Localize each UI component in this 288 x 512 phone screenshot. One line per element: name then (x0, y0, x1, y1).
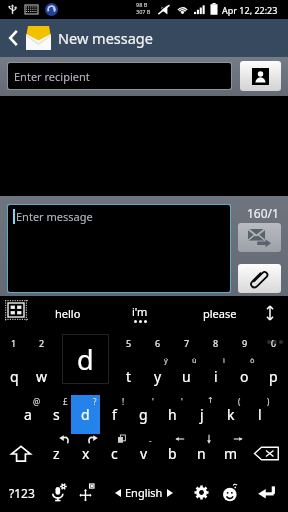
button[interactable]: i'm (110, 296, 170, 330)
button[interactable]: c (100, 434, 129, 473)
staticText: v (140, 444, 148, 463)
staticText: é (76, 355, 81, 365)
staticText: ý (164, 355, 168, 365)
staticText: a (24, 405, 32, 424)
staticText: Enter message (16, 209, 93, 224)
button[interactable]: Shift (0, 434, 42, 473)
button[interactable]: ↑ (187, 395, 216, 434)
staticText: ' (181, 396, 183, 407)
staticText: 8 (213, 337, 219, 349)
staticText: i (214, 367, 218, 386)
button[interactable]: - (129, 434, 158, 473)
staticText: 7 (184, 337, 190, 349)
staticText: hello (55, 306, 81, 321)
staticText: z (53, 444, 60, 463)
staticText: £ (63, 396, 68, 407)
button[interactable]: Expand suggestions (258, 296, 282, 330)
staticText: p (269, 367, 278, 386)
button[interactable]: ò (230, 356, 259, 395)
staticText: l (258, 405, 262, 424)
button[interactable]: Enter recipient (8, 63, 231, 89)
button[interactable]: ù (172, 356, 201, 395)
staticText: w (36, 367, 48, 386)
button[interactable]: Delete (245, 434, 288, 473)
button[interactable]: n (187, 434, 216, 473)
staticText: m (224, 444, 238, 463)
staticText: ò (250, 355, 255, 365)
staticText: q (10, 367, 19, 386)
staticText: 2 (39, 337, 45, 349)
button[interactable]: Send (238, 223, 281, 252)
button[interactable]: hello (34, 296, 102, 330)
staticText: u (182, 367, 191, 386)
button[interactable]: z (42, 434, 71, 473)
staticText: - (149, 435, 152, 446)
staticText: s (53, 405, 60, 424)
button[interactable]: t (114, 356, 143, 395)
staticText: 160/1 (247, 205, 279, 221)
staticText: 6 (155, 337, 161, 349)
button[interactable]: w (28, 356, 56, 395)
staticText: ?123 (9, 485, 35, 501)
button[interactable]: Move cursor (72, 473, 101, 512)
button[interactable]: q (0, 356, 28, 395)
button[interactable]: ' (129, 395, 158, 434)
staticText: n (197, 444, 206, 463)
button[interactable]: Select contacts (240, 61, 281, 91)
staticText: ì (223, 355, 225, 365)
button[interactable]: m (216, 434, 245, 473)
staticText: 0 (271, 337, 277, 349)
button[interactable]: x (71, 434, 100, 473)
button[interactable]: £ (42, 395, 71, 434)
staticText: r (97, 367, 103, 386)
button[interactable]: @ (13, 395, 42, 434)
staticText: k (227, 405, 235, 424)
staticText: c (111, 444, 118, 463)
staticText: j (200, 405, 204, 424)
button[interactable]: ý (143, 356, 172, 395)
staticText: i'm (132, 304, 148, 319)
staticText: x (82, 444, 90, 463)
button[interactable]: r (85, 356, 114, 395)
button[interactable]: please (180, 296, 260, 330)
button[interactable]: Voice input (43, 473, 72, 512)
button[interactable]: Settings (187, 473, 216, 512)
button[interactable]: Enter (245, 473, 288, 512)
button[interactable]: Emoji (216, 473, 245, 512)
staticText: h (168, 405, 177, 424)
button[interactable]: Keyboard options (4, 299, 28, 321)
button[interactable]: ì (201, 356, 230, 395)
staticText: 307 B (136, 8, 151, 15)
staticText: English (125, 485, 163, 500)
button[interactable]: ? (71, 395, 100, 434)
button[interactable]: Enter message (8, 205, 230, 292)
staticText: ' (152, 396, 154, 407)
staticText: ↑ (207, 396, 214, 405)
staticText: b (168, 444, 177, 463)
button[interactable]: é (56, 356, 85, 395)
staticText: y (154, 367, 162, 386)
staticText: Enter recipient (14, 69, 90, 84)
staticText: o (240, 367, 249, 386)
staticText: 9 (242, 337, 248, 349)
button[interactable]: p (259, 356, 288, 395)
button[interactable]: English (101, 473, 187, 512)
staticText: ! (122, 396, 125, 407)
staticText: Apr 12, 22:23 (222, 4, 278, 16)
button[interactable]: Attach (238, 264, 281, 293)
button[interactable]: ( (216, 395, 245, 434)
button[interactable]: Navigate up (0, 19, 26, 57)
staticText: ( (238, 396, 241, 407)
staticText: ) (267, 396, 270, 407)
staticText: d (81, 405, 90, 424)
button[interactable]: b (158, 434, 187, 473)
staticText: ? (93, 396, 97, 407)
staticText: New message (58, 28, 153, 48)
staticText: t (126, 367, 132, 386)
button[interactable]: ) (245, 395, 274, 434)
button[interactable]: ' (158, 395, 187, 434)
button[interactable]: ?123 (0, 473, 43, 512)
button[interactable]: ! (100, 395, 129, 434)
